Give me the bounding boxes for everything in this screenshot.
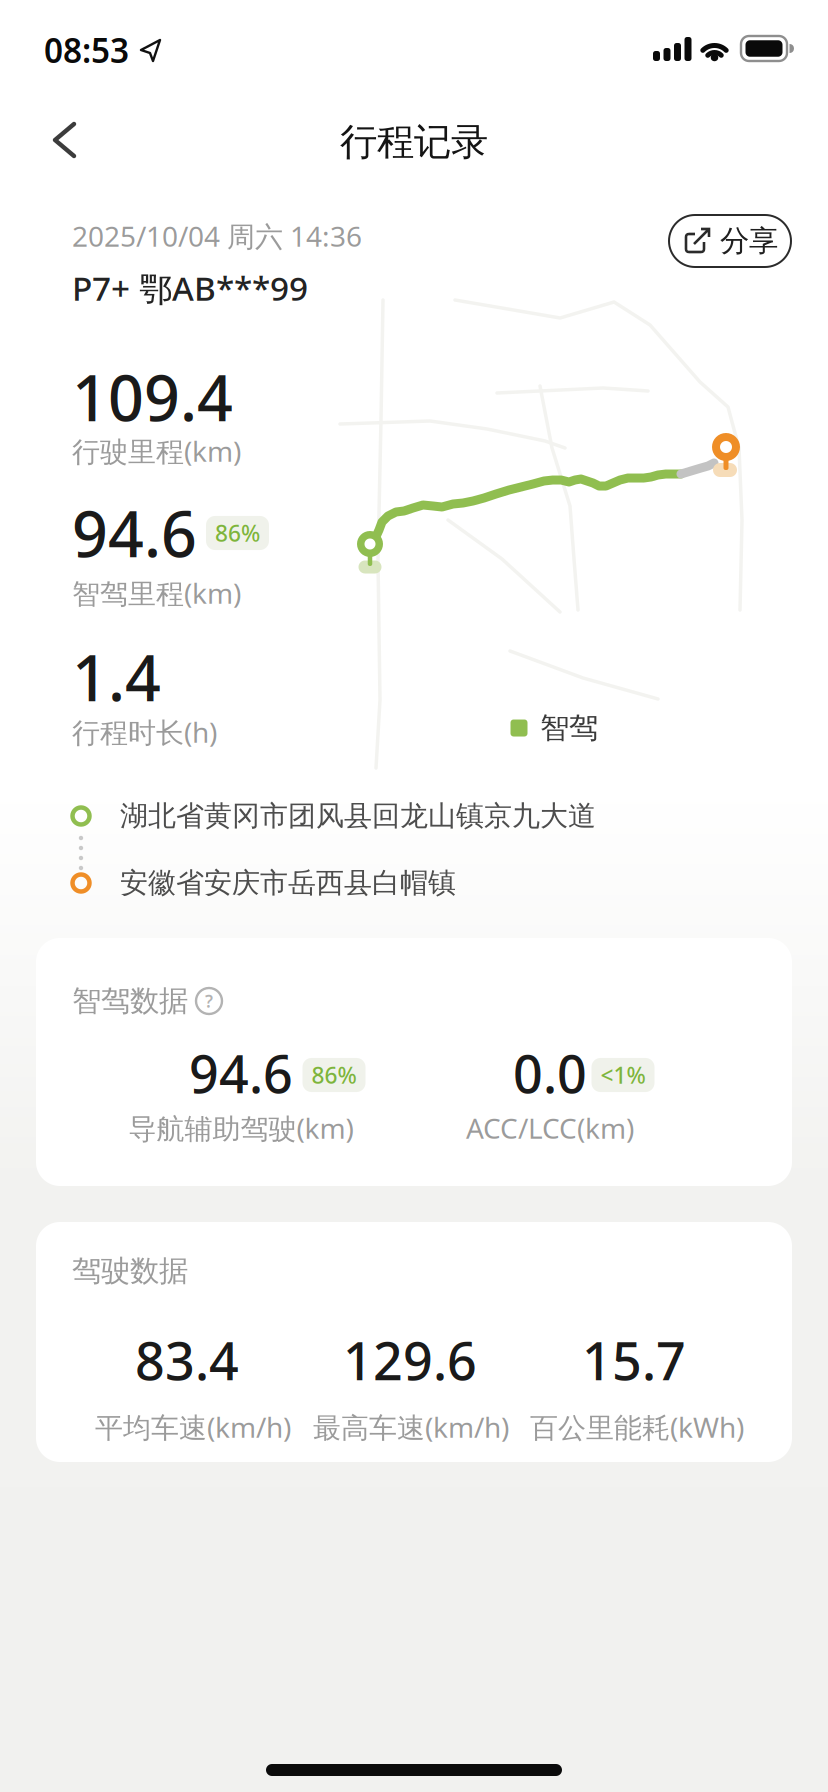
staticText: 行程时长(h) (72, 713, 217, 751)
staticText: 2025/10/04 周六 14:36 (72, 217, 362, 255)
staticText: 15.7 (582, 1325, 686, 1395)
staticText: 分享 (720, 223, 778, 259)
staticText: 94.6 (189, 1038, 293, 1108)
staticText: 109.4 (72, 355, 233, 439)
staticText: 08:53 (44, 28, 129, 72)
staticText: ACC/LCC(km) (466, 1109, 634, 1147)
staticText: 湖北省黄冈市团风县回龙山镇京九大道 (120, 799, 596, 833)
staticText: 86% (311, 1060, 356, 1090)
staticText: 0.0 (513, 1038, 587, 1108)
staticText: 86% (215, 518, 260, 548)
staticText: 智驾数据 (72, 983, 188, 1019)
staticText: 129.6 (343, 1325, 477, 1395)
staticText: 驾驶数据 (72, 1253, 188, 1289)
staticText: 智驾 (540, 710, 598, 746)
button[interactable]: 分享 (669, 215, 791, 267)
staticText: 安徽省安庆市岳西县白帽镇 (120, 866, 456, 900)
staticText: <1% (600, 1060, 645, 1090)
staticText: 导航辅助驾驶(km) (128, 1109, 353, 1147)
staticText: 行驶里程(km) (72, 432, 241, 470)
staticText: 智驾里程(km) (72, 574, 241, 612)
staticText: 平均车速(km/h) (95, 1408, 291, 1446)
staticText: 1.4 (72, 635, 161, 719)
staticText: ? (205, 989, 213, 1012)
staticText: P7+ 鄂AB***99 (72, 266, 308, 310)
staticText: 94.6 (72, 491, 197, 575)
button[interactable]: 返回 (40, 116, 88, 164)
staticText: 行程记录 (340, 119, 488, 165)
staticText: 最高车速(km/h) (313, 1408, 509, 1446)
button[interactable]: 智驾数据说明 (196, 988, 222, 1014)
staticText: 百公里能耗(kWh) (530, 1408, 744, 1446)
staticText: 83.4 (135, 1325, 239, 1395)
